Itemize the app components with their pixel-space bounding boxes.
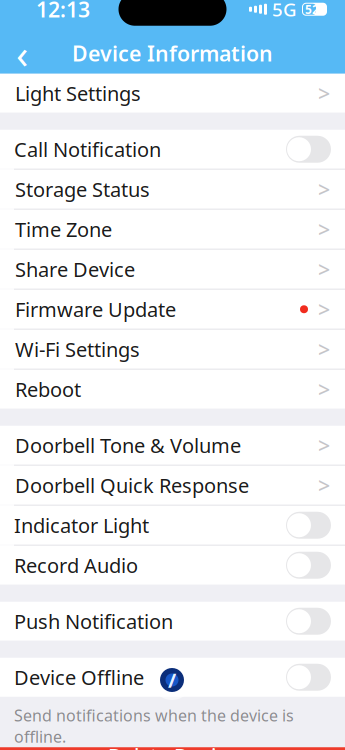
staticText: Send notifications when the device is of… bbox=[14, 705, 294, 747]
button[interactable]: Push Notification bbox=[0, 602, 345, 641]
staticText: > bbox=[318, 255, 330, 283]
staticText: Push Notification bbox=[14, 608, 173, 635]
button[interactable]: Back bbox=[0, 33, 44, 73]
staticText: > bbox=[318, 431, 330, 459]
button[interactable]: Delete Device bbox=[0, 747, 345, 750]
staticText: > bbox=[318, 79, 330, 107]
staticText: Doorbell Quick Response bbox=[15, 472, 249, 499]
button[interactable]: Time Zone bbox=[0, 210, 345, 249]
staticText: Device Information bbox=[72, 39, 273, 67]
staticText: Device Offline bbox=[14, 664, 144, 691]
staticText: > bbox=[318, 335, 330, 363]
button[interactable]: Reboot bbox=[0, 370, 345, 409]
staticText: > bbox=[318, 215, 330, 243]
button[interactable]: Device Offline bbox=[0, 658, 345, 697]
staticText: > bbox=[318, 175, 330, 203]
staticText: > bbox=[318, 295, 330, 323]
staticText: 12:13 bbox=[36, 0, 90, 23]
staticText: Share Device bbox=[15, 256, 135, 283]
button[interactable]: Firmware Update bbox=[0, 290, 345, 329]
staticText: Call Notification bbox=[14, 136, 161, 163]
staticText: Light Settings bbox=[15, 80, 141, 107]
button[interactable]: Record Audio bbox=[0, 546, 345, 585]
staticText: > bbox=[318, 471, 330, 499]
staticText: Time Zone bbox=[15, 216, 112, 243]
staticText: Firmware Update bbox=[15, 296, 176, 323]
button[interactable]: Light Settings bbox=[0, 74, 345, 113]
staticText: Delete Device bbox=[108, 742, 237, 750]
staticText: Reboot bbox=[15, 376, 81, 403]
staticText: Doorbell Tone & Volume bbox=[15, 432, 241, 459]
button[interactable]: Doorbell Tone & Volume bbox=[0, 426, 345, 465]
staticText: ‹ bbox=[16, 27, 28, 80]
button[interactable]: Storage Status bbox=[0, 170, 345, 209]
staticText: 52 bbox=[305, 1, 319, 17]
button[interactable]: Wi-Fi Settings bbox=[0, 330, 345, 369]
button[interactable]: Call Notification bbox=[0, 130, 345, 169]
button[interactable]: Doorbell Quick Response bbox=[0, 466, 345, 505]
staticText: Wi-Fi Settings bbox=[15, 336, 140, 363]
staticText: Indicator Light bbox=[14, 512, 149, 539]
button[interactable]: Indicator Light bbox=[0, 506, 345, 545]
staticText: 5G bbox=[272, 0, 297, 22]
staticText: / bbox=[168, 667, 176, 693]
button[interactable]: Share Device bbox=[0, 250, 345, 289]
staticText: Storage Status bbox=[15, 176, 150, 203]
staticText: > bbox=[318, 375, 330, 403]
staticText: Record Audio bbox=[14, 552, 138, 579]
